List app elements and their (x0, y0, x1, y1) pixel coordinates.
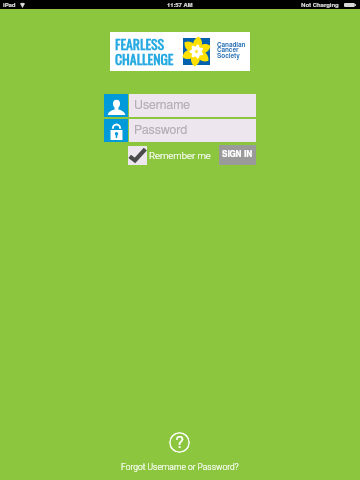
staticText: Cancer (217, 47, 239, 53)
staticText: Society (217, 53, 240, 59)
staticText: Not Charging (301, 2, 339, 8)
button[interactable]: Help (169, 432, 190, 453)
button[interactable]: Remember me (128, 146, 211, 165)
staticText: SIGN IN (222, 151, 253, 159)
staticText: Canadian (217, 42, 246, 48)
staticText: CHALLENGE (115, 49, 174, 69)
staticText: ? (175, 435, 184, 451)
staticText: Password (134, 124, 188, 137)
button[interactable]: Username (104, 94, 128, 117)
button[interactable]: Password (129, 119, 256, 142)
staticText: Username (134, 99, 190, 112)
button[interactable]: Username (129, 94, 256, 117)
staticText: iPad (3, 2, 16, 8)
button[interactable]: SIGN IN (219, 145, 256, 165)
staticText: Remember me (149, 150, 211, 161)
button[interactable]: Forgot Username or Password? (121, 462, 239, 472)
staticText: 11:57 AM (167, 2, 193, 8)
staticText: FEARLESS (115, 34, 165, 54)
button[interactable]: Password (104, 119, 128, 142)
staticText: Forgot Username or Password? (121, 462, 239, 472)
